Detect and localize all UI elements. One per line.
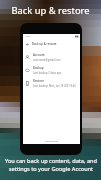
button[interactable]: Restore: [23, 77, 80, 90]
button[interactable]: Account: [23, 51, 80, 64]
button[interactable]: Back: [23, 40, 32, 49]
staticText: Last backup: Mon, Jan 18 2021 8:45: [33, 84, 76, 88]
staticText: Restore: [33, 79, 44, 83]
staticText: Backup: [33, 66, 44, 70]
staticText: Back up & restore: [32, 42, 57, 46]
staticText: Account: [33, 53, 45, 57]
staticText: You can back up content, data, and setti…: [5, 157, 97, 173]
button[interactable]: Backup: [23, 64, 80, 77]
staticText: Last backup 2 days ago: [33, 71, 62, 75]
staticText: username@gmail.com: [33, 58, 61, 62]
staticText: Back up & restore: [11, 4, 90, 17]
staticText: 10:04: [25, 35, 31, 38]
